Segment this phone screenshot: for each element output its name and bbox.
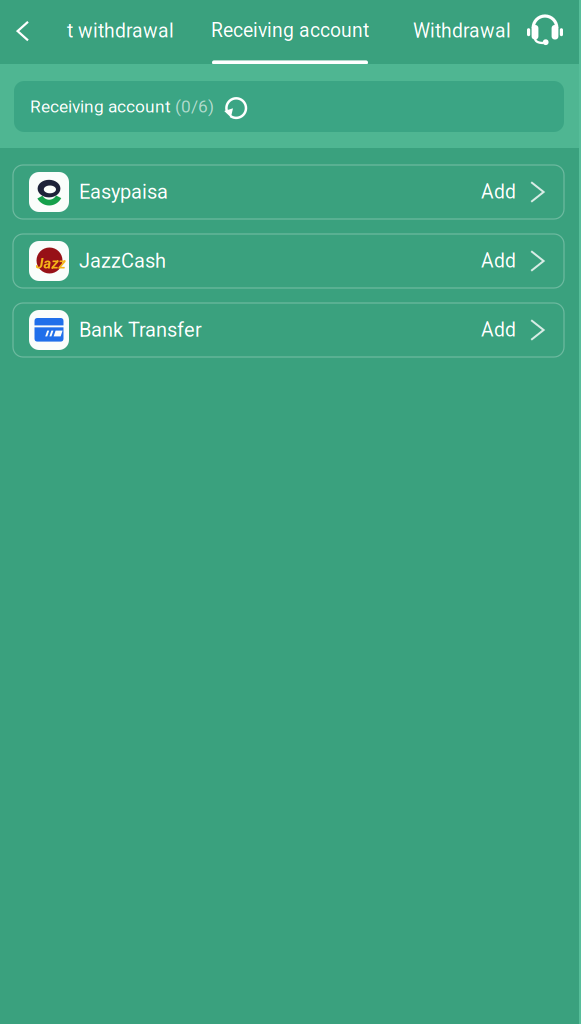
staticText: Add (481, 181, 516, 203)
button[interactable]: Receiving account (211, 0, 369, 64)
staticText: Receiving account (211, 19, 369, 42)
staticText: Bank Transfer (79, 318, 202, 342)
staticText: JazzCash (79, 249, 166, 273)
button[interactable]: Bank Transfer (13, 303, 564, 357)
staticText: Receiving account (30, 96, 171, 117)
button[interactable]: Customer support (524, 6, 566, 50)
staticText: Jazz (35, 255, 65, 272)
button[interactable]: Back (2, 9, 44, 53)
button[interactable]: Easypaisa (13, 165, 564, 219)
staticText: t withdrawal (67, 20, 174, 42)
button[interactable]: t withdrawal (67, 9, 174, 53)
button[interactable]: Jazz (13, 234, 564, 288)
staticText: Add (481, 319, 516, 341)
staticText: Withdrawal (413, 20, 511, 42)
button[interactable]: Refresh (214, 93, 248, 120)
button[interactable]: Withdrawal (413, 9, 511, 53)
staticText: Easypaisa (79, 180, 168, 204)
staticText: (0/6) (171, 96, 214, 117)
staticText: Add (481, 250, 516, 272)
